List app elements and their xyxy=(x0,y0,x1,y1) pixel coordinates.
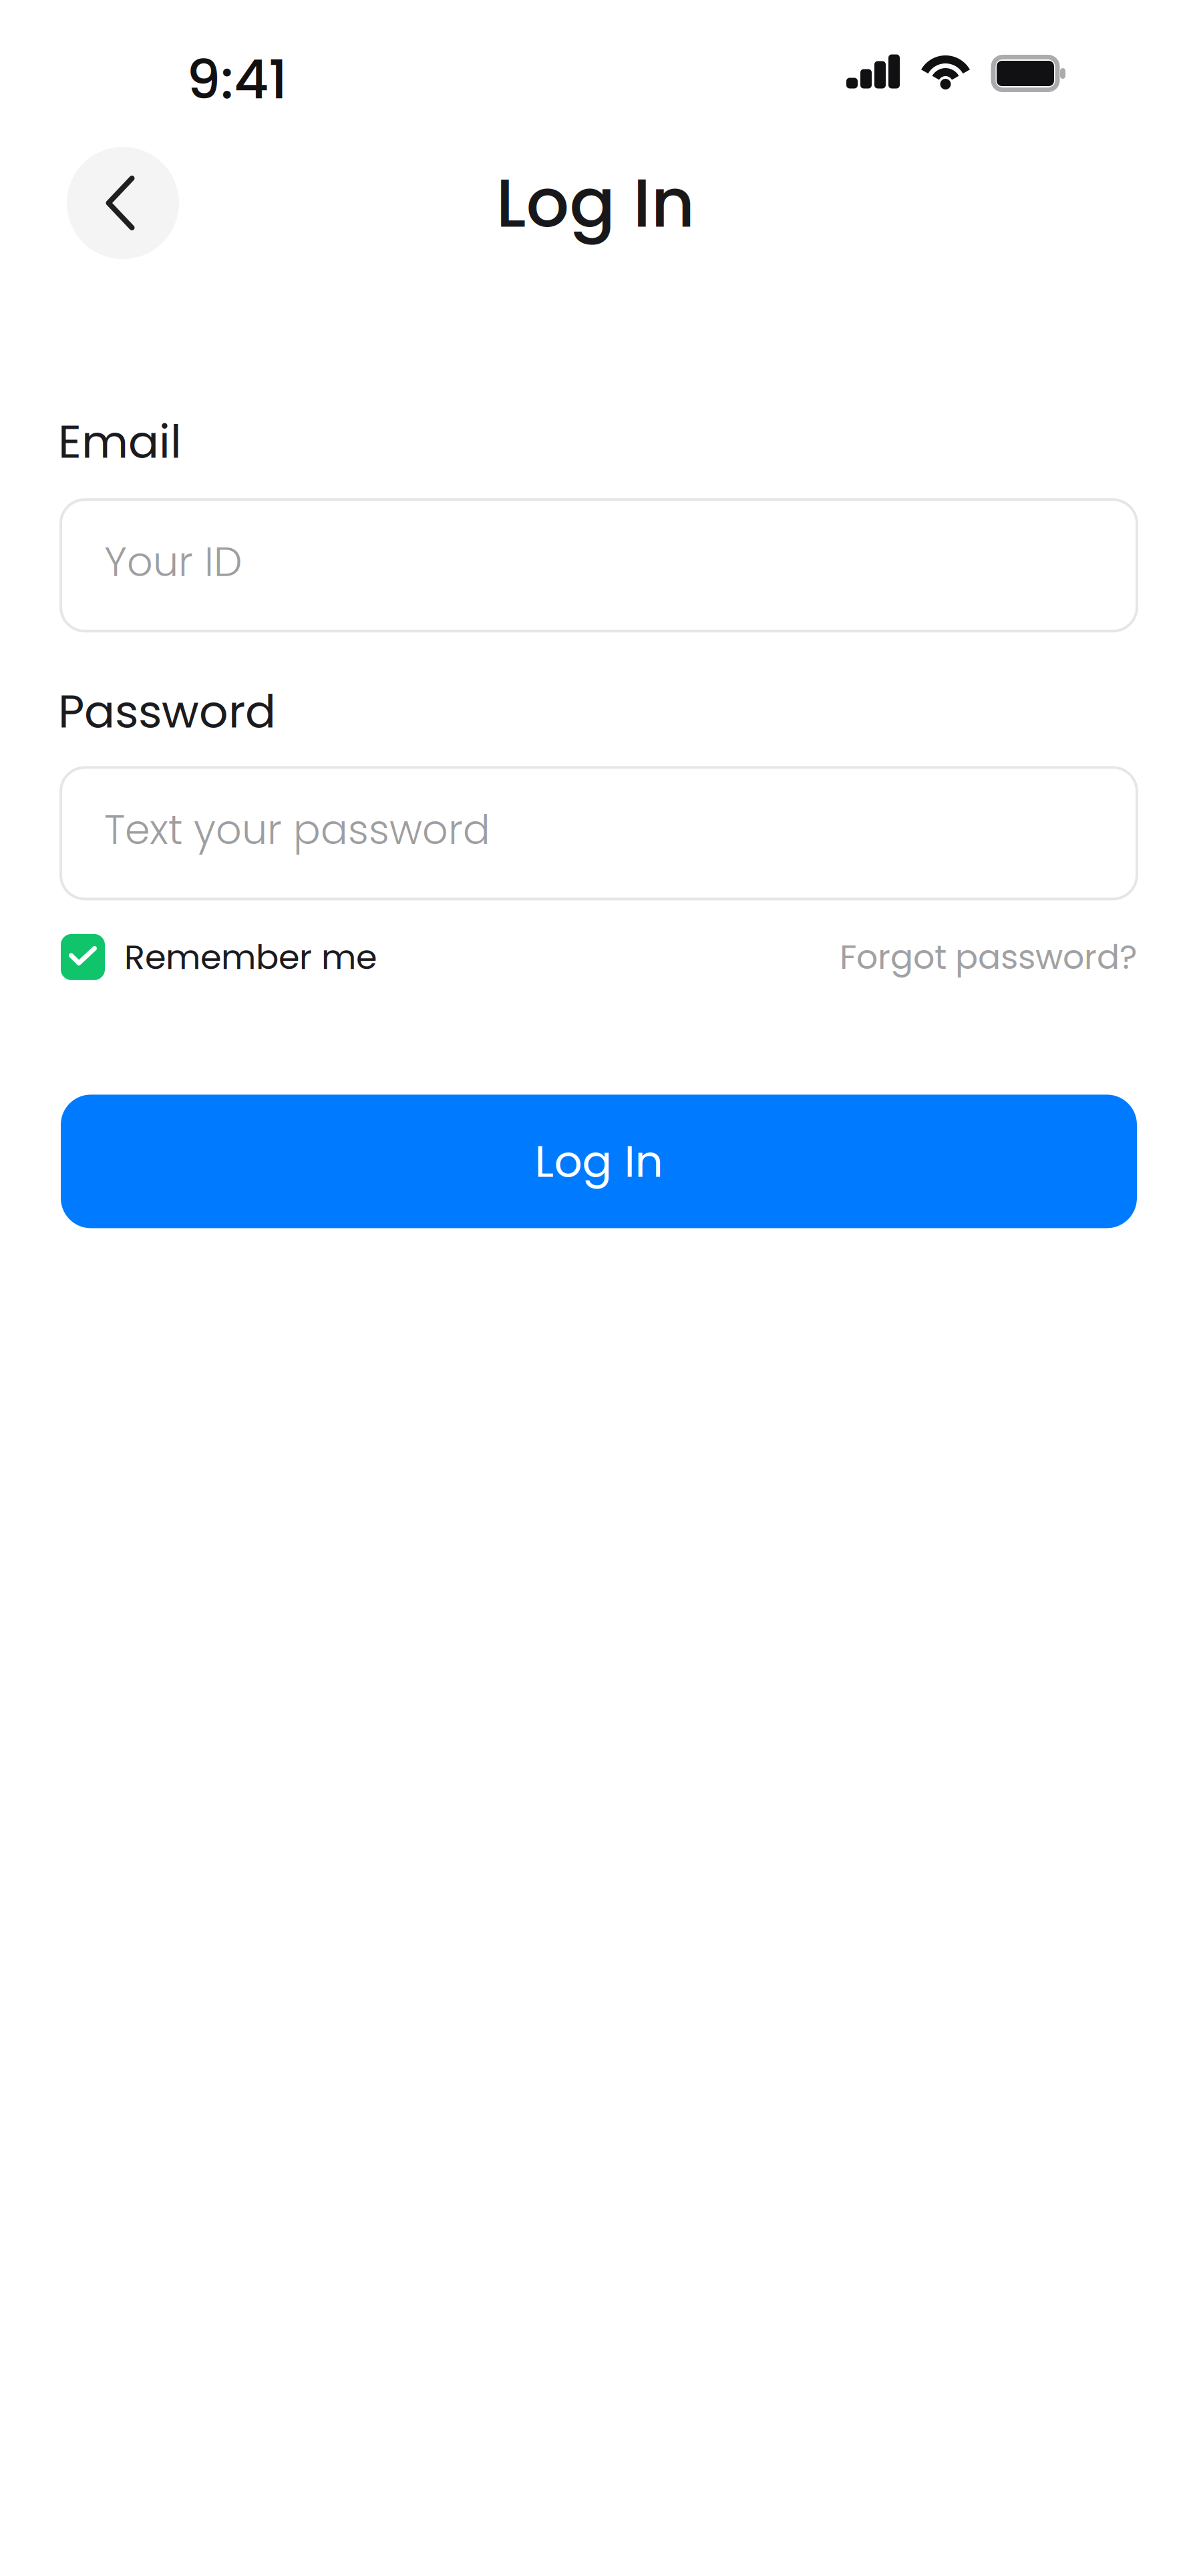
staticText: 9:41 xyxy=(186,42,287,117)
staticText: Log In xyxy=(496,156,695,250)
button[interactable]: Log In xyxy=(61,1095,1137,1228)
staticText: Remember me xyxy=(124,933,377,981)
staticText: Text your password xyxy=(104,802,490,858)
staticText: Forgot password? xyxy=(840,934,1137,981)
button[interactable]: Remember me xyxy=(61,933,377,981)
staticText: Email xyxy=(58,410,182,474)
staticText: Log In xyxy=(535,1131,663,1192)
button[interactable]: Back xyxy=(67,147,179,259)
staticText: Your ID xyxy=(104,534,242,590)
staticText: Password xyxy=(58,680,276,743)
button[interactable]: Forgot password? xyxy=(840,934,1137,981)
